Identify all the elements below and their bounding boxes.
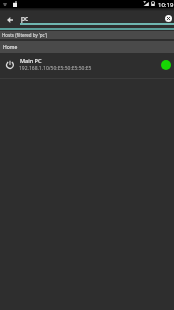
button[interactable]: Back	[2, 12, 18, 28]
staticText: Main PC	[20, 57, 42, 64]
button[interactable]: Clear search	[164, 14, 173, 23]
staticText: 192.168.1.10/50:E5:50:E5:50:E5	[19, 65, 92, 72]
staticText: Home	[3, 44, 18, 51]
staticText: Hosts (filtered by 'pc')	[2, 32, 48, 38]
button[interactable]: Home	[0, 41, 174, 53]
staticText: pc	[21, 14, 29, 23]
other: Wake on LAN	[6, 61, 14, 69]
staticText: 10:19	[158, 1, 174, 9]
button[interactable]: Wake on LAN	[0, 53, 174, 78]
other: Online	[161, 60, 171, 70]
